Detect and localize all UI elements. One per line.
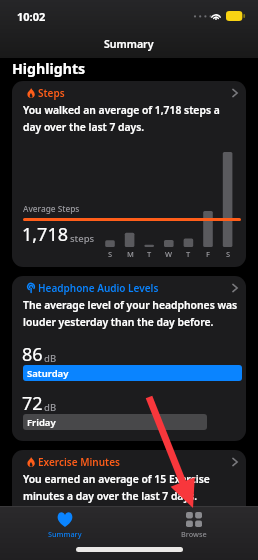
button[interactable]: Exercise Minutes — [12, 450, 246, 540]
staticText: dB — [44, 401, 57, 414]
staticText: steps — [70, 232, 95, 245]
staticText: S — [108, 249, 113, 259]
staticText: W — [165, 249, 173, 259]
staticText: You walked an average of 1,718 steps a d… — [23, 103, 220, 134]
staticText: Headphone Audio Levels — [38, 281, 159, 295]
button[interactable]: Summary — [0, 512, 129, 544]
staticText: Saturday — [27, 367, 69, 380]
staticText: You earned an average of 15 Exercise min… — [23, 472, 210, 503]
staticText: S — [226, 249, 231, 259]
staticText: T — [147, 249, 152, 259]
button[interactable]: Steps — [12, 81, 246, 267]
staticText: The average level of your headphones was… — [23, 298, 238, 329]
staticText: Steps — [38, 86, 65, 100]
button[interactable]: Browse — [129, 512, 258, 544]
staticText: M — [127, 249, 134, 259]
staticText: Average Steps — [23, 203, 80, 214]
staticText: Exercise Minutes — [38, 455, 120, 469]
staticText: dB — [44, 352, 57, 365]
staticText: F — [206, 249, 210, 259]
staticText: Friday — [27, 416, 56, 429]
staticText: Summary — [104, 37, 154, 51]
button[interactable]: Headphone Audio Levels — [12, 276, 246, 441]
staticText: T — [186, 249, 191, 259]
staticText: Browse — [181, 529, 207, 539]
staticText: 10:02 — [17, 9, 46, 24]
staticText: Highlights — [12, 59, 86, 78]
staticText: Summary — [48, 529, 82, 539]
staticText: 72 — [22, 391, 43, 416]
staticText: 1,718 — [22, 222, 69, 247]
staticText: 86 — [22, 342, 43, 367]
